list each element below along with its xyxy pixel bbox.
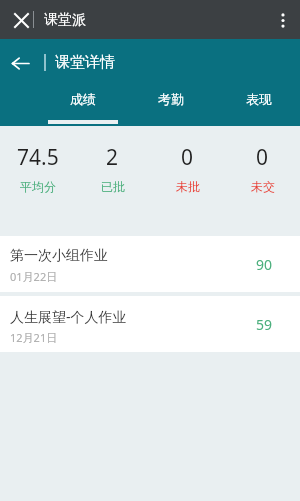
staticText: 0 [181,143,194,172]
staticText: 表现 [246,91,272,107]
button[interactable]: 第一次小组作业 [0,236,300,292]
button[interactable]: 0 [225,126,300,194]
button[interactable]: 人生展望-个人作业 [0,296,300,352]
staticText: 2 [106,143,119,172]
staticText: 平均分 [20,179,56,194]
button[interactable]: 考勤 [136,91,206,124]
staticText: 90 [256,255,273,274]
button[interactable]: 0 [150,126,225,194]
staticText: 课堂详情 [55,53,115,72]
staticText: 人生展望-个人作业 [10,307,127,326]
button[interactable]: 表现 [224,91,294,124]
staticText: 74.5 [17,143,59,172]
button[interactable]: 成绩 [48,91,118,124]
button[interactable]: More options [266,3,300,37]
staticText: 未交 [251,179,275,194]
button[interactable]: Close [7,6,35,34]
button[interactable]: 74.5 [0,126,75,194]
button[interactable]: 2 [75,126,150,194]
staticText: 课堂派 [44,11,86,29]
staticText: 12月21日 [10,330,58,345]
staticText: 已批 [101,179,125,194]
staticText: 考勤 [158,91,184,107]
staticText: 成绩 [70,91,96,107]
staticText: 第一次小组作业 [10,247,108,265]
staticText: 59 [256,315,273,334]
staticText: 未批 [176,179,200,194]
staticText: 01月22日 [10,269,58,284]
staticText: 0 [256,143,269,172]
button[interactable]: Back [4,47,36,79]
